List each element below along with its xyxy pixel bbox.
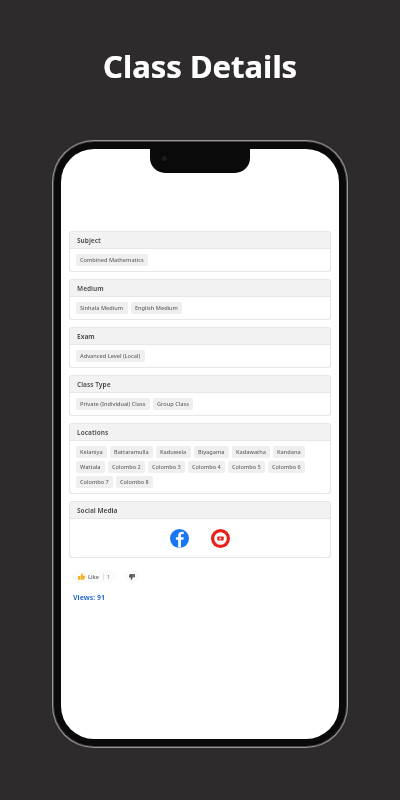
button[interactable]: Dislike — [124, 569, 139, 584]
button[interactable]: Kelaniya — [76, 446, 107, 458]
button[interactable]: Kandana — [273, 446, 305, 458]
button[interactable]: Colombo 6 — [268, 461, 305, 473]
button[interactable]: Private (Individual) Class — [76, 398, 150, 410]
button[interactable]: Colombo 2 — [108, 461, 145, 473]
button[interactable]: Group Class — [153, 398, 193, 410]
staticText: Colombo 5 — [232, 463, 261, 471]
staticText: Class Details — [103, 45, 298, 87]
button[interactable]: Combined Mathematics — [76, 254, 148, 266]
button[interactable]: English Medium — [131, 302, 182, 314]
staticText: Advanced Level (Local) — [80, 352, 141, 360]
staticText: Colombo 4 — [192, 463, 221, 471]
staticText: Views: 91 — [73, 593, 105, 603]
button[interactable]: Like — [73, 570, 116, 583]
staticText: Colombo 8 — [120, 478, 149, 486]
button[interactable]: Sinhala Medium — [76, 302, 128, 314]
staticText: 1 — [107, 573, 111, 580]
staticText: Kaduwela — [160, 448, 187, 456]
staticText: Subject — [77, 236, 101, 245]
button[interactable]: Kaduwela — [156, 446, 191, 458]
staticText: Biyagama — [198, 448, 225, 456]
button[interactable]: Colombo 3 — [148, 461, 185, 473]
button[interactable]: Exam — [70, 328, 330, 367]
staticText: Kelaniya — [80, 448, 103, 456]
staticText: Battaramulla — [114, 448, 149, 456]
staticText: Kandana — [277, 448, 301, 456]
button[interactable]: Kadawatha — [232, 446, 270, 458]
button[interactable]: Social Media — [70, 502, 330, 557]
button[interactable]: Class Type — [70, 376, 330, 415]
staticText: Combined Mathematics — [80, 256, 144, 264]
staticText: English Medium — [135, 304, 178, 312]
staticText: Wattala — [80, 463, 101, 471]
staticText: Locations — [77, 428, 109, 437]
staticText: Like — [88, 573, 100, 580]
button[interactable]: Advanced Level (Local) — [76, 350, 145, 362]
button[interactable]: Medium — [70, 280, 330, 319]
staticText: Colombo 7 — [80, 478, 109, 486]
button[interactable]: Locations — [70, 424, 330, 493]
staticText: Class Type — [77, 380, 111, 389]
staticText: Sinhala Medium — [80, 304, 124, 312]
staticText: Colombo 6 — [272, 463, 301, 471]
button[interactable]: Colombo 5 — [228, 461, 265, 473]
staticText: Kadawatha — [236, 448, 266, 456]
button[interactable]: Subject — [70, 232, 330, 271]
button[interactable]: Views: 91 — [73, 593, 105, 603]
staticText: Medium — [77, 284, 104, 293]
staticText: Colombo 3 — [152, 463, 181, 471]
button[interactable]: Colombo 7 — [76, 476, 113, 488]
staticText: Exam — [77, 332, 95, 341]
button[interactable]: Colombo 8 — [116, 476, 153, 488]
button[interactable]: Colombo 4 — [188, 461, 225, 473]
staticText: Colombo 2 — [112, 463, 141, 471]
button[interactable]: Facebook — [170, 529, 189, 548]
button[interactable]: YouTube — [211, 529, 230, 548]
button[interactable]: Wattala — [76, 461, 105, 473]
button[interactable]: Biyagama — [194, 446, 229, 458]
button[interactable]: Battaramulla — [110, 446, 153, 458]
staticText: Private (Individual) Class — [80, 400, 146, 408]
staticText: Social Media — [77, 506, 118, 515]
staticText: Group Class — [157, 400, 189, 408]
